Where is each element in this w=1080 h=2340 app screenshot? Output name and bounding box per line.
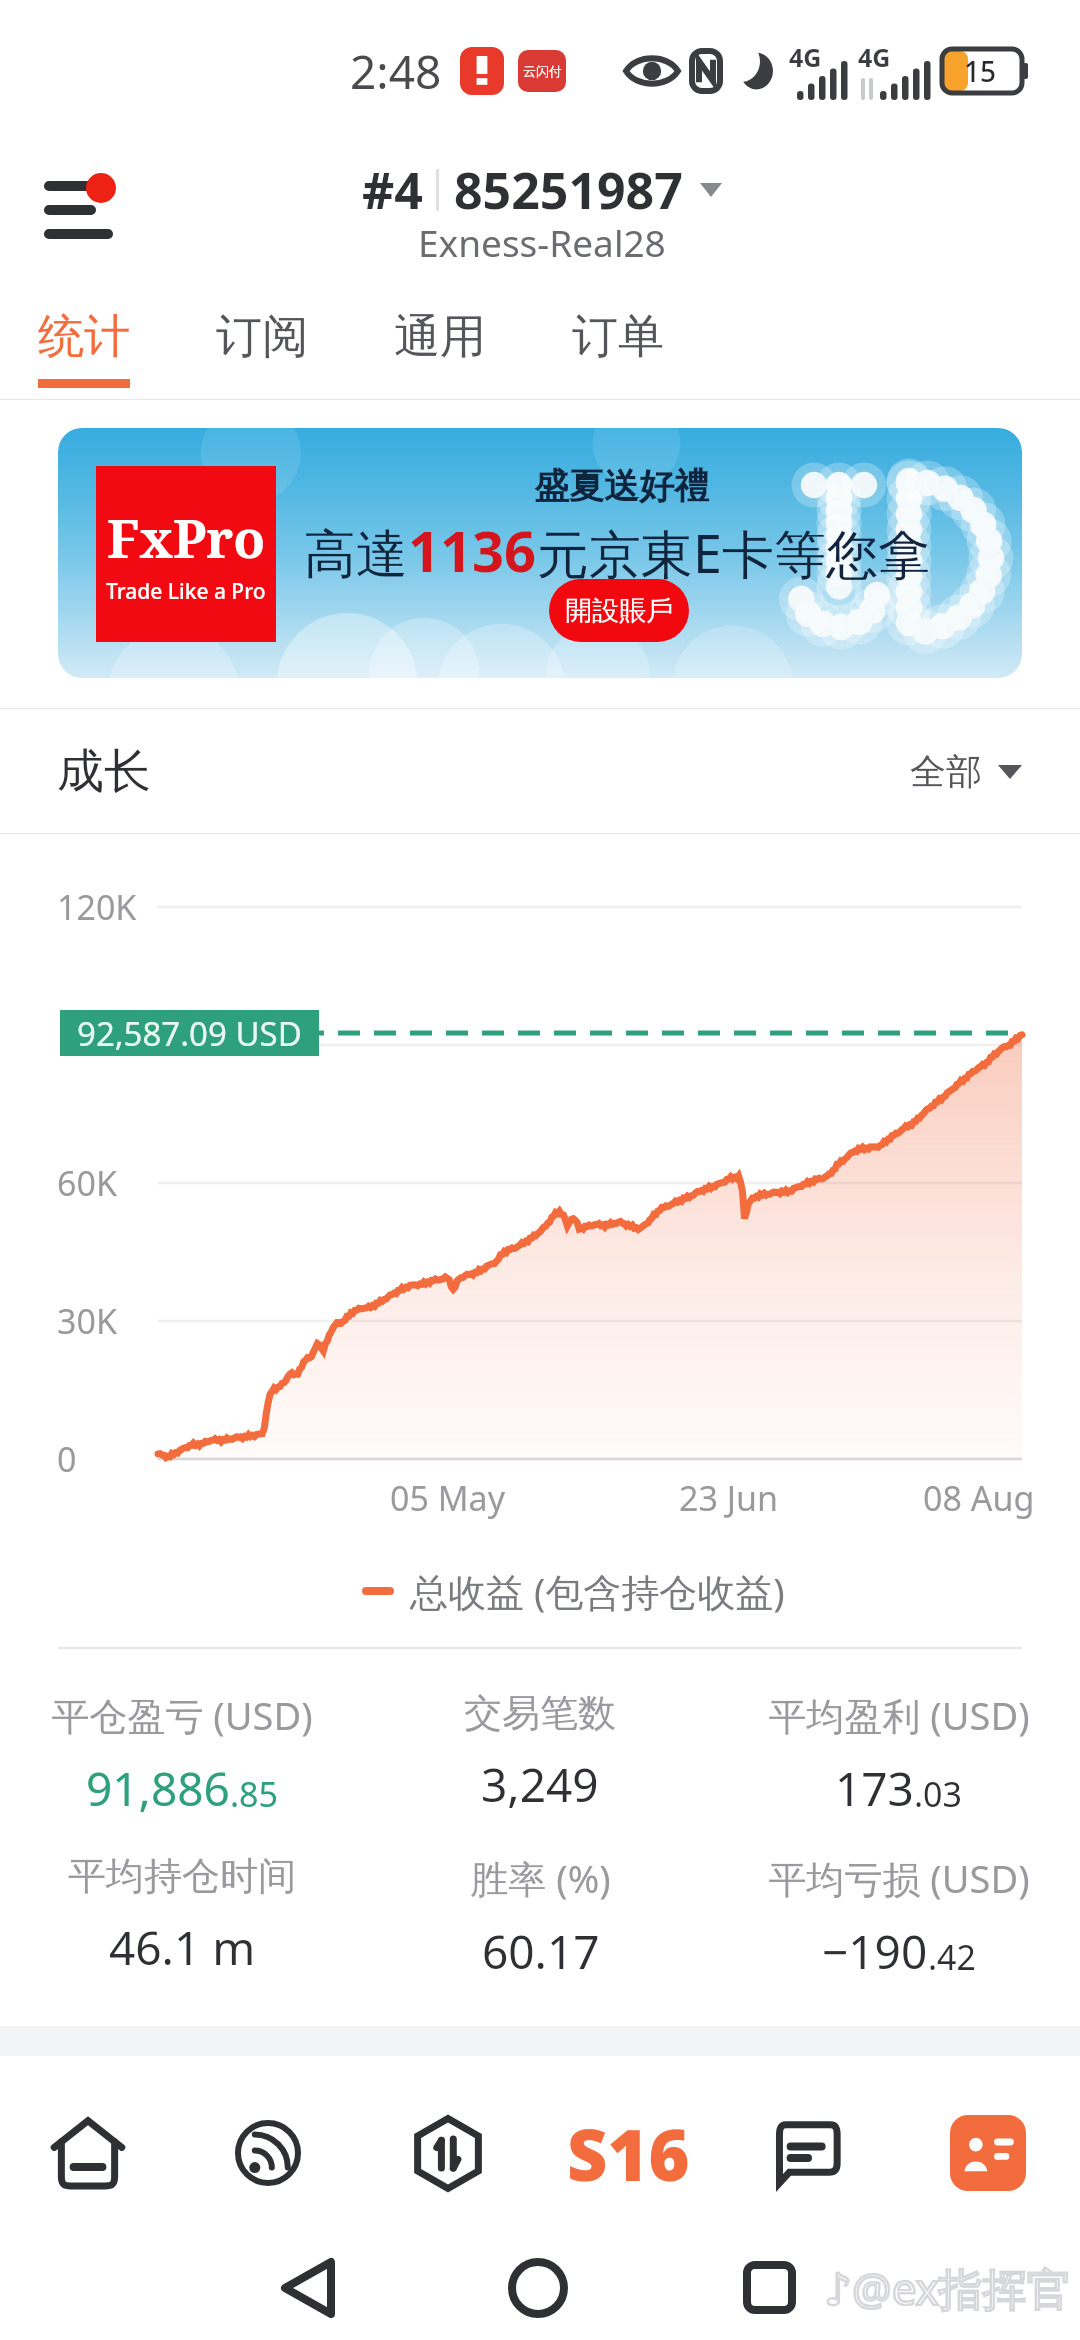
button[interactable]: Recents [709,2236,829,2340]
staticText: 173 [835,1757,914,1820]
staticText: 成长 [57,742,151,801]
staticText: 订单 [572,308,664,366]
staticText: 总收益 (包含持仓收益) [410,1565,785,1617]
staticText: 元京東E卡等您拿 [537,517,930,588]
button[interactable]: Stats [538,2063,718,2243]
staticText: 3,249 [481,1753,599,1816]
button[interactable]: 開設賬戶 [549,579,689,642]
staticText: 平均持仓时间 [68,1852,296,1900]
button[interactable]: Back [250,2236,370,2340]
staticText: 60.17 [482,1920,600,1983]
staticText: 交易笔数 [464,1689,616,1737]
staticText: 05 May [390,1475,505,1521]
staticText: 92,587.09 USD [77,1011,302,1056]
button[interactable]: 订阅 [216,292,308,399]
staticText: 平均亏损 (USD) [768,1852,1030,1904]
staticText: 平仓盈亏 (USD) [51,1689,313,1741]
staticText: S16 [567,2106,690,2201]
button[interactable]: Menu [10,164,140,270]
button[interactable]: Profile [898,2063,1078,2243]
staticText: 08 Aug [923,1475,1035,1521]
staticText: −190 [822,1920,928,1983]
staticText: 平均盈利 (USD) [768,1689,1030,1741]
staticText: 统计 [38,308,130,366]
staticText: 30K [57,1298,117,1344]
staticText: 订阅 [216,308,308,366]
staticText: 全部 [910,749,982,794]
staticText: 15 [964,52,997,90]
staticText: 0 [57,1436,77,1482]
staticText: FxPro [107,502,266,573]
staticText: .42 [928,1934,977,1980]
staticText: 高達 [304,522,408,588]
button[interactable]: 通用 [394,292,486,399]
staticText: 91,886 [86,1757,230,1820]
staticText: 4G [858,40,891,74]
staticText: 4G [789,40,822,74]
staticText: Exness-Real28 [418,217,666,267]
staticText: .03 [914,1771,963,1817]
staticText: 120K [57,884,137,930]
staticText: 60K [57,1160,117,1206]
button[interactable]: Home [478,2236,598,2340]
button[interactable]: Chat [718,2063,898,2243]
staticText: ♪@ex指挥官！ [824,2258,1080,2318]
staticText: 開設賬戶 [565,594,673,628]
staticText: 通用 [394,308,486,366]
staticText: 2:48 [350,40,442,103]
staticText: Trade Like a Pro [106,577,266,606]
staticText: .85 [230,1771,279,1817]
staticText: 46.1 m [109,1916,256,1979]
button[interactable]: 全部 [910,749,1022,794]
staticText: 85251987 [454,156,683,224]
button[interactable]: 统计 [38,292,130,399]
staticText: 1136 [408,512,537,588]
button[interactable]: Home [0,2063,178,2243]
button[interactable]: 订单 [572,292,664,399]
staticText: 盛夏送好禮 [534,464,709,508]
button[interactable]: #4 [362,156,722,274]
button[interactable]: Trade [358,2063,538,2243]
button[interactable]: FxPro [58,428,1022,678]
staticText: #4 [362,156,423,224]
staticText: 云闪付 [523,63,562,79]
staticText: 胜率 (%) [470,1852,611,1904]
button[interactable]: Signals [178,2063,358,2243]
staticText: 23 Jun [679,1475,779,1521]
